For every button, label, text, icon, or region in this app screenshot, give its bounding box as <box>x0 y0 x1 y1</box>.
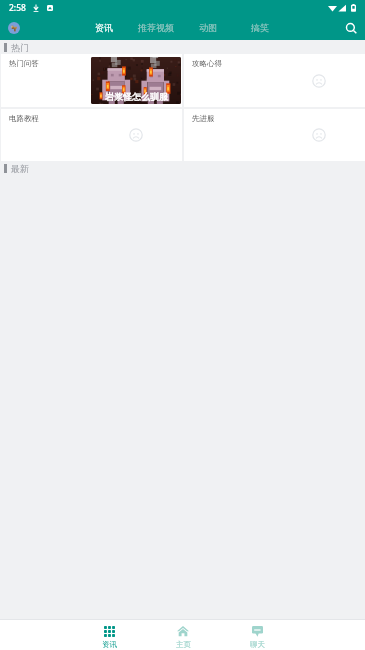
staticText: 电路教程 <box>9 114 39 123</box>
staticText: 动图 <box>199 22 217 33</box>
button[interactable]: 推荐视频 <box>130 15 182 40</box>
button[interactable]: 先进服 <box>184 109 365 161</box>
staticText: 推荐视频 <box>138 22 174 33</box>
staticText: 搞笑 <box>251 22 269 33</box>
staticText: 最新 <box>11 163 29 174</box>
staticText: 热门问答 <box>9 59 39 68</box>
button[interactable]: Search <box>340 17 362 39</box>
button[interactable]: Profile <box>8 22 20 34</box>
button[interactable]: 搞笑 <box>234 15 286 40</box>
staticText: 聊天 <box>250 640 265 649</box>
button[interactable]: 动图 <box>182 15 234 40</box>
staticText: 2:58 <box>9 2 26 14</box>
button[interactable]: 电路教程 <box>1 109 182 161</box>
staticText: 攻略心得 <box>192 59 222 68</box>
staticText: 资讯 <box>95 22 113 33</box>
staticText: 热门 <box>11 42 29 53</box>
staticText: 先进服 <box>192 114 215 123</box>
button[interactable]: 主页 <box>146 620 220 650</box>
button[interactable]: 攻略心得 <box>184 54 365 107</box>
button[interactable]: 资讯 <box>72 620 146 650</box>
staticText: 岩浆怪怎么驯服 <box>105 91 168 102</box>
button[interactable]: 热门问答 <box>1 54 182 107</box>
button[interactable]: 聊天 <box>220 620 294 650</box>
staticText: 主页 <box>176 640 191 649</box>
button[interactable]: 资讯 <box>78 15 130 40</box>
staticText: 资讯 <box>102 640 117 649</box>
